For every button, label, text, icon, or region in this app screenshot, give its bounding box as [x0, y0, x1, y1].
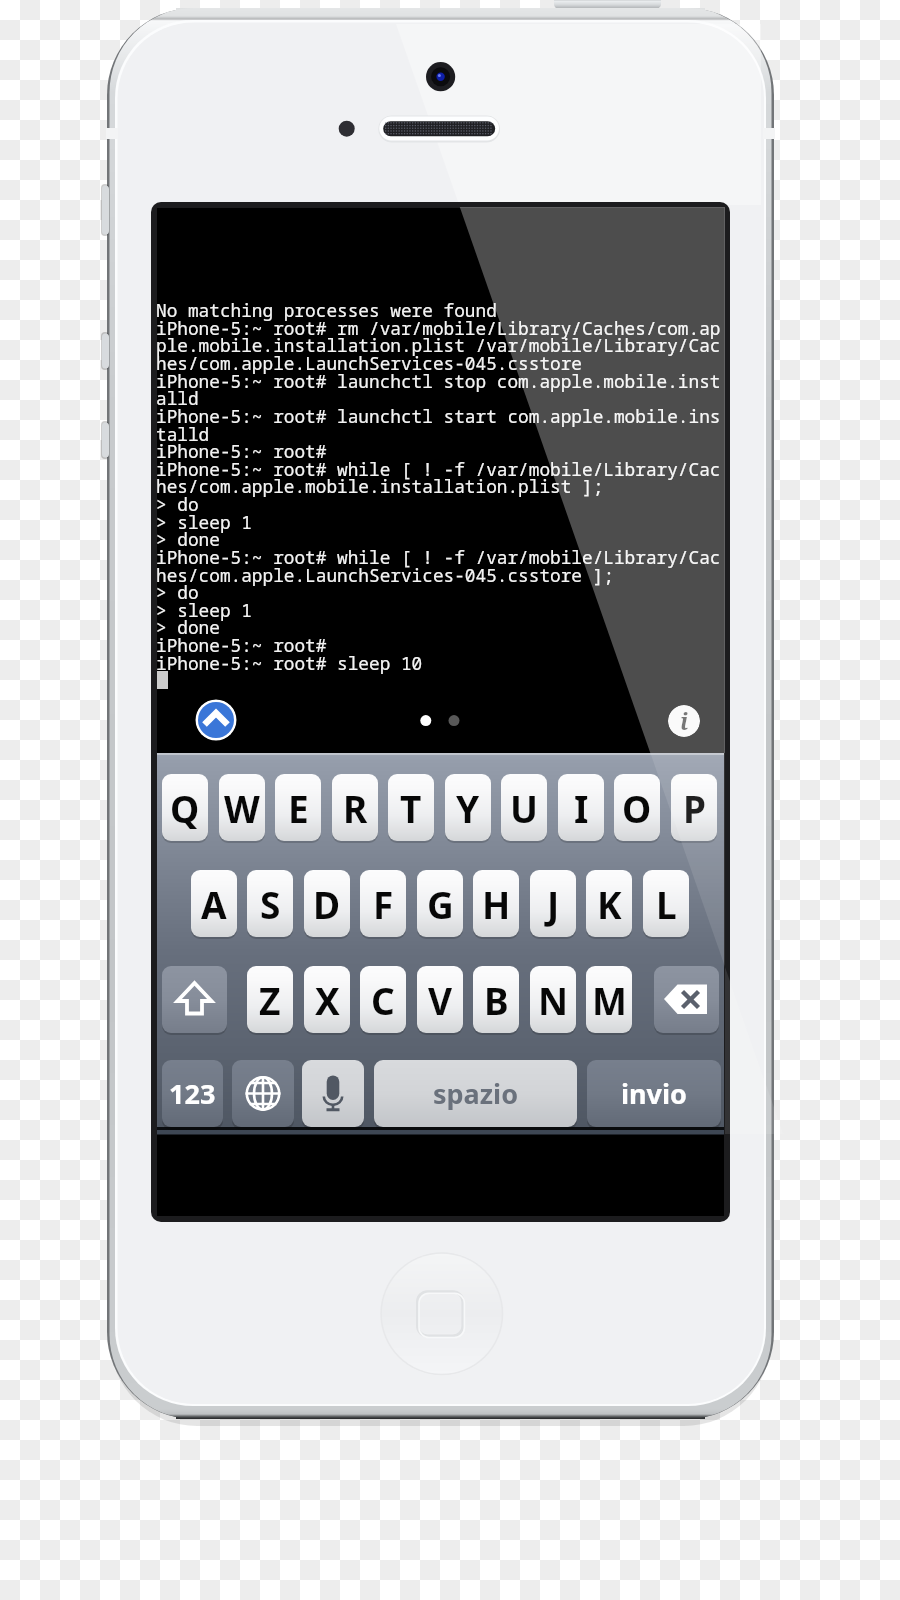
staticText: hes/com.apple.mobile.installation.plist … — [156, 474, 604, 498]
button[interactable]: F — [360, 870, 406, 937]
staticText: > do — [156, 492, 199, 516]
button[interactable]: J — [530, 870, 576, 937]
button[interactable]: Scroll up — [195, 699, 237, 741]
staticText: H — [482, 879, 511, 929]
button[interactable]: G — [417, 870, 463, 937]
staticText: iPhone-5:~ root# launchctl stop com.appl… — [156, 369, 721, 393]
button[interactable]: Z — [247, 966, 293, 1033]
button[interactable]: L — [643, 870, 689, 937]
button[interactable]: D — [304, 870, 350, 937]
button[interactable]: S — [247, 870, 293, 937]
staticText: > done — [156, 527, 220, 551]
staticText: E — [288, 783, 309, 833]
staticText: No matching processes were found — [156, 298, 497, 322]
button[interactable]: Info — [668, 705, 700, 737]
staticText: P — [683, 783, 706, 833]
button[interactable]: Switch keyboard — [232, 1060, 294, 1127]
staticText: iPhone-5:~ root# while [ ! -f /var/mobil… — [156, 457, 721, 481]
button[interactable]: H — [473, 870, 519, 937]
staticText: S — [260, 879, 281, 929]
staticText: I — [574, 783, 589, 833]
staticText: V — [428, 975, 453, 1025]
staticText: W — [224, 783, 260, 833]
staticText: hes/com.apple.LaunchServices-045.csstore… — [156, 563, 614, 587]
button[interactable]: I — [558, 774, 604, 841]
staticText: N — [538, 975, 569, 1025]
button[interactable]: Dictate — [302, 1060, 364, 1127]
staticText: R — [343, 783, 368, 833]
staticText: G — [427, 879, 454, 929]
button[interactable]: N — [530, 966, 576, 1033]
button[interactable]: 123 — [162, 1060, 223, 1127]
staticText: U — [510, 783, 538, 833]
button[interactable]: Shift — [162, 966, 227, 1033]
staticText: D — [313, 879, 341, 929]
staticText: M — [592, 975, 627, 1025]
button[interactable]: M — [586, 966, 632, 1033]
button[interactable]: P — [671, 774, 717, 841]
staticText: > do — [156, 580, 199, 604]
button[interactable]: O — [614, 774, 660, 841]
button[interactable]: V — [417, 966, 463, 1033]
staticText: F — [373, 879, 394, 929]
staticText: iPhone-5:~ root# rm /var/mobile/Library/… — [156, 316, 721, 340]
staticText: A — [201, 879, 227, 929]
button[interactable]: X — [304, 966, 350, 1033]
button[interactable]: invio — [587, 1060, 721, 1127]
staticText: Q — [170, 783, 200, 833]
button[interactable]: C — [360, 966, 406, 1033]
staticText: hes/com.apple.LaunchServices-045.csstore — [156, 351, 583, 375]
staticText: talld — [156, 422, 210, 446]
staticText: Y — [456, 783, 480, 833]
staticText: iPhone-5:~ root# — [156, 439, 327, 463]
staticText: K — [597, 879, 622, 929]
staticText: Z — [259, 975, 281, 1025]
button[interactable]: K — [586, 870, 632, 937]
button[interactable]: Q — [162, 774, 208, 841]
staticText: i — [680, 705, 689, 736]
button[interactable]: E — [275, 774, 321, 841]
staticText: > sleep 1 — [156, 598, 252, 622]
staticText: L — [656, 879, 677, 929]
staticText: T — [400, 783, 422, 833]
staticText: O — [622, 783, 652, 833]
staticText: iPhone-5:~ root# sleep 10 — [156, 651, 423, 675]
staticText: spazio — [433, 1075, 519, 1112]
button[interactable]: A — [191, 870, 237, 937]
staticText: J — [547, 879, 560, 929]
button[interactable]: spazio — [374, 1060, 577, 1127]
staticText: iPhone-5:~ root# while [ ! -f /var/mobil… — [156, 545, 721, 569]
staticText: X — [315, 975, 340, 1025]
staticText: invio — [621, 1075, 687, 1112]
staticText: > done — [156, 615, 220, 639]
staticText: iPhone-5:~ root# — [156, 633, 327, 657]
staticText: 123 — [169, 1075, 216, 1112]
button[interactable]: Y — [445, 774, 491, 841]
button[interactable]: U — [501, 774, 547, 841]
staticText: alld — [156, 386, 199, 410]
staticText: ple.mobile.installation.plist /var/mobil… — [156, 333, 721, 357]
button[interactable]: B — [473, 966, 519, 1033]
staticText: iPhone-5:~ root# launchctl start com.app… — [156, 404, 721, 428]
staticText: > sleep 1 — [156, 510, 252, 534]
staticText: C — [371, 975, 395, 1025]
button[interactable]: W — [219, 774, 265, 841]
button[interactable]: R — [332, 774, 378, 841]
button[interactable]: T — [388, 774, 434, 841]
button[interactable]: Backspace — [654, 966, 719, 1033]
staticText: B — [484, 975, 509, 1025]
